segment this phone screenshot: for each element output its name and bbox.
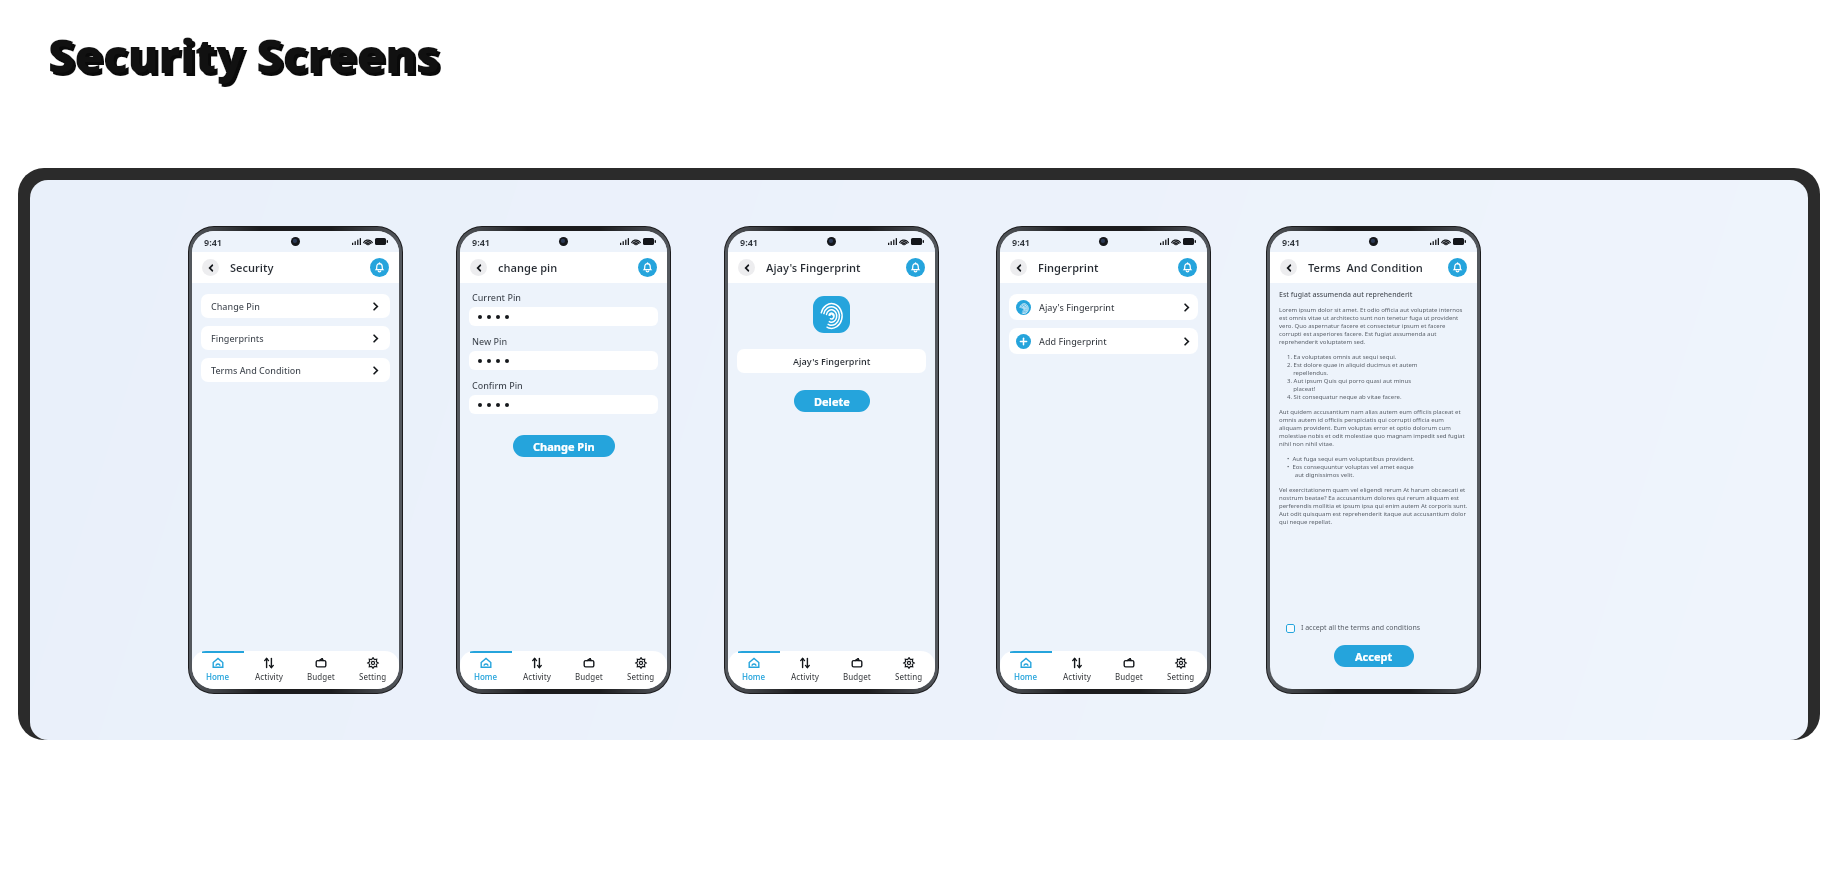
staticText: 9:41 bbox=[740, 236, 758, 248]
staticText: Home bbox=[206, 671, 230, 682]
button[interactable]: Back bbox=[738, 259, 755, 276]
button[interactable]: Back bbox=[1280, 259, 1297, 276]
staticText: New Pin bbox=[472, 335, 508, 347]
button[interactable]: Budget bbox=[831, 657, 883, 689]
button[interactable]: Add Fingerprint bbox=[1009, 328, 1198, 354]
button[interactable]: Fingerprints bbox=[201, 326, 390, 350]
staticText: change pin bbox=[498, 260, 558, 275]
staticText: Budget bbox=[843, 671, 871, 682]
button[interactable]: Setting bbox=[615, 657, 667, 689]
button[interactable]: Activity bbox=[243, 657, 295, 689]
staticText: Home bbox=[474, 671, 498, 682]
staticText: Aut quidem accusantium nam alias autem e… bbox=[1279, 408, 1468, 448]
staticText: Ajay's Fingerprint bbox=[793, 355, 871, 367]
staticText: Setting bbox=[895, 671, 923, 682]
staticText: Security Screens bbox=[48, 24, 440, 87]
staticText: Home bbox=[1014, 671, 1038, 682]
staticText: Terms And Condition bbox=[211, 364, 371, 376]
staticText: 9:41 bbox=[472, 236, 490, 248]
staticText: Confirm Pin bbox=[472, 379, 523, 391]
button[interactable] bbox=[469, 307, 658, 326]
staticText: 2. Est dolore quae in aliquid ducimus et… bbox=[1287, 361, 1418, 377]
staticText: 4. Sit consequatur neque ab vitae facere… bbox=[1287, 393, 1402, 401]
button[interactable]: Ajay's Fingerprint bbox=[1009, 294, 1198, 320]
button[interactable]: Back bbox=[202, 259, 219, 276]
staticText: Budget bbox=[575, 671, 603, 682]
staticText: Terms And Condition bbox=[1308, 260, 1423, 275]
button[interactable] bbox=[469, 351, 658, 370]
button[interactable]: Setting bbox=[883, 657, 935, 689]
staticText: Ajay's Fingerprint bbox=[766, 260, 861, 275]
staticText: Setting bbox=[627, 671, 655, 682]
staticText: 1. Ea voluptates omnis aut sequi sequi. bbox=[1287, 353, 1397, 361]
button[interactable]: Back bbox=[1010, 259, 1027, 276]
staticText: • Eos consequuntur voluptas vel amet eaq… bbox=[1287, 463, 1414, 479]
staticText: Accept bbox=[1355, 649, 1393, 664]
staticText: Budget bbox=[1115, 671, 1143, 682]
button[interactable]: Home bbox=[192, 657, 243, 689]
button[interactable]: Notifications bbox=[1178, 258, 1197, 277]
button[interactable] bbox=[469, 395, 658, 414]
button[interactable]: Back bbox=[470, 259, 487, 276]
staticText: Est fugiat assumenda aut reprehenderit bbox=[1279, 290, 1413, 300]
button[interactable]: Setting bbox=[1155, 657, 1207, 689]
staticText: Vel exercitationem quam vel eligendi rer… bbox=[1279, 486, 1468, 526]
button[interactable]: Notifications bbox=[370, 258, 389, 277]
button[interactable]: Change Pin bbox=[513, 435, 615, 457]
staticText: I accept all the terms and conditions bbox=[1301, 623, 1421, 633]
button[interactable]: Activity bbox=[511, 657, 563, 689]
button[interactable]: Home bbox=[460, 657, 511, 689]
button[interactable]: Budget bbox=[1103, 657, 1155, 689]
staticText: Add Fingerprint bbox=[1039, 335, 1182, 347]
button[interactable]: Accept bbox=[1334, 645, 1414, 667]
staticText: • Aut fuga sequi eum voluptatibus provid… bbox=[1287, 455, 1415, 463]
button[interactable]: Budget bbox=[563, 657, 615, 689]
button[interactable]: Ajay's Fingerprint bbox=[737, 349, 926, 373]
staticText: Fingerprints bbox=[211, 332, 371, 344]
staticText: Activity bbox=[791, 671, 820, 682]
staticText: Lorem ipsum dolor sit amet. Et odio offi… bbox=[1279, 306, 1468, 346]
button[interactable]: Activity bbox=[1051, 657, 1103, 689]
staticText: Home bbox=[742, 671, 766, 682]
button[interactable]: I accept all the terms and conditions bbox=[1286, 623, 1421, 633]
button[interactable]: Setting bbox=[347, 657, 399, 689]
staticText: Fingerprint bbox=[1038, 260, 1099, 275]
staticText: Setting bbox=[359, 671, 387, 682]
staticText: Activity bbox=[523, 671, 552, 682]
button[interactable]: Notifications bbox=[906, 258, 925, 277]
button[interactable]: Budget bbox=[295, 657, 347, 689]
button[interactable]: Notifications bbox=[638, 258, 657, 277]
staticText: 9:41 bbox=[1012, 236, 1030, 248]
staticText: Ajay's Fingerprint bbox=[1039, 301, 1182, 313]
button[interactable]: Terms And Condition bbox=[201, 358, 390, 382]
staticText: Activity bbox=[255, 671, 284, 682]
staticText: Current Pin bbox=[472, 291, 521, 303]
button[interactable]: Activity bbox=[779, 657, 831, 689]
staticText: 9:41 bbox=[204, 236, 222, 248]
staticText: Delete bbox=[814, 394, 850, 409]
button[interactable]: Change Pin bbox=[201, 294, 390, 318]
staticText: Budget bbox=[307, 671, 335, 682]
staticText: Security Screens bbox=[51, 27, 443, 90]
staticText: Change Pin bbox=[211, 300, 371, 312]
button[interactable]: Notifications bbox=[1448, 258, 1467, 277]
staticText: Activity bbox=[1063, 671, 1092, 682]
button[interactable]: Home bbox=[1000, 657, 1051, 689]
button[interactable]: Delete bbox=[794, 390, 870, 412]
staticText: 9:41 bbox=[1282, 236, 1300, 248]
staticText: Setting bbox=[1167, 671, 1195, 682]
button[interactable]: Home bbox=[728, 657, 779, 689]
staticText: Change Pin bbox=[533, 439, 595, 454]
staticText: 3. Aut ipsum Quis qui porro quasi aut mi… bbox=[1287, 377, 1412, 393]
staticText: Security bbox=[230, 260, 274, 275]
